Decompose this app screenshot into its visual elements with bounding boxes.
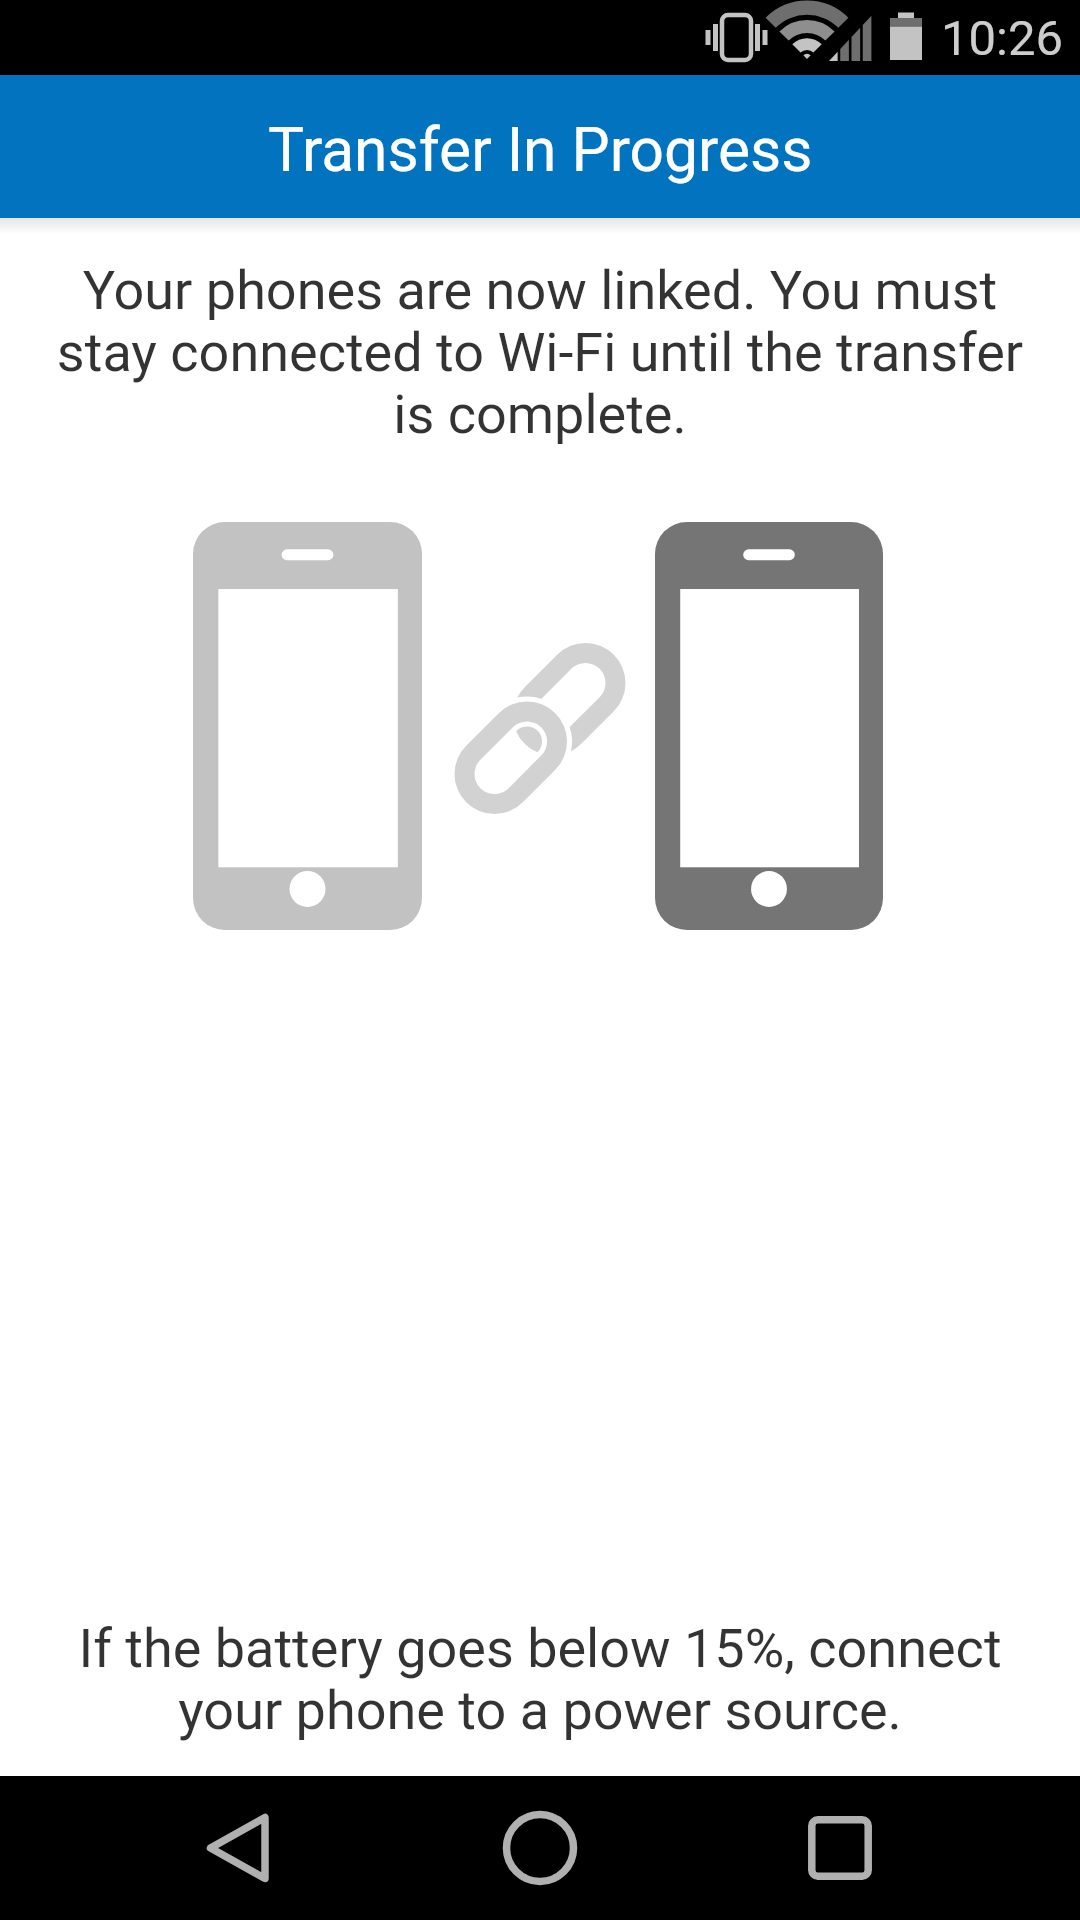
button[interactable]: Home (468, 1776, 612, 1920)
button[interactable]: Back (165, 1776, 309, 1920)
staticText: If the battery goes below 15%, connect y… (0, 1617, 1080, 1742)
staticText: Your phones are now linked. You must sta… (0, 259, 1080, 446)
button[interactable]: Transfer In Progress (0, 75, 1080, 218)
staticText: Transfer In Progress (268, 115, 813, 186)
staticText: 10:26 (941, 10, 1064, 67)
button[interactable]: Recent apps (768, 1776, 912, 1920)
